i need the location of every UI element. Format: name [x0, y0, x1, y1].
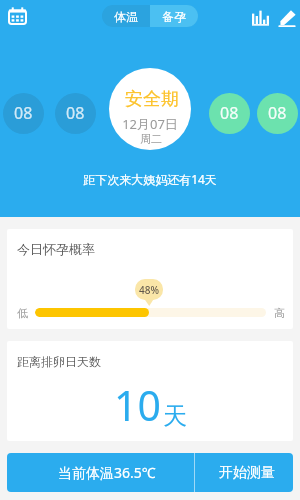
button[interactable]: 08 [3, 93, 44, 134]
staticText: 08 [268, 102, 287, 124]
button[interactable]: 08 [257, 93, 298, 134]
staticText: 08 [14, 102, 33, 124]
button[interactable]: 08 [55, 93, 96, 134]
button[interactable]: Statistics [250, 8, 270, 28]
staticText: 08 [220, 102, 239, 124]
staticText: 高 [274, 306, 285, 320]
button[interactable]: 开始测量 [195, 453, 293, 492]
staticText: 开始测量 [219, 464, 275, 482]
button[interactable]: 备孕 [150, 5, 198, 27]
staticText: 天 [163, 401, 187, 431]
button[interactable]: 当前体温36.5℃ [7, 453, 194, 492]
staticText: 低 [17, 306, 28, 320]
staticText: 体温 [114, 9, 138, 24]
staticText: 周二 [110, 132, 191, 146]
staticText: 48% [139, 283, 159, 297]
staticText: 距下次来大姨妈还有14天 [0, 171, 300, 187]
button[interactable]: 08 [209, 93, 250, 134]
staticText: 08 [66, 102, 85, 124]
staticText: 12月07日 [109, 115, 191, 133]
staticText: 10 [114, 377, 161, 433]
button[interactable]: Calendar [4, 3, 30, 29]
staticText: 今日怀孕概率 [17, 241, 95, 257]
button[interactable]: Edit [277, 8, 297, 28]
button[interactable]: 安全期 [109, 68, 191, 150]
staticText: 备孕 [162, 9, 186, 24]
staticText: 当前体温36.5℃ [58, 463, 156, 482]
button[interactable]: 体温 [102, 5, 150, 27]
staticText: 安全期 [111, 88, 191, 111]
staticText: 距离排卵日天数 [17, 354, 101, 369]
